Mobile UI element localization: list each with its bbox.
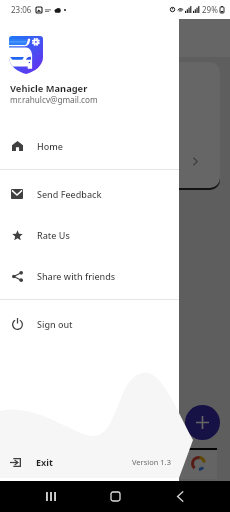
button[interactable]: Share with friends [0, 255, 179, 296]
staticText: mr.rahulcv@gmail.com [10, 94, 98, 105]
button[interactable]: Home [0, 125, 179, 166]
staticText: Vehicle Manager [10, 82, 88, 95]
staticText: 23:06 [11, 4, 32, 15]
staticText: Exit [36, 456, 53, 468]
button[interactable]: Recents [46, 492, 56, 501]
button[interactable]: Exit [10, 456, 53, 468]
staticText: Sign out [37, 318, 73, 330]
button[interactable] [11, 62, 220, 188]
staticText: Version 1.3 [132, 457, 171, 467]
staticText: 29% [202, 4, 218, 15]
staticText: Share with friends [37, 270, 116, 282]
button[interactable]: Rate Us [0, 214, 179, 255]
button[interactable]: Add [185, 405, 220, 440]
button[interactable]: Home [111, 492, 120, 501]
staticText: Home [37, 140, 63, 152]
staticText: Rate Us [37, 229, 70, 241]
button[interactable]: Back [176, 491, 184, 502]
staticText: Send Feedback [37, 188, 102, 200]
button[interactable]: Sign out [0, 303, 179, 344]
button[interactable]: Send Feedback [0, 173, 179, 214]
